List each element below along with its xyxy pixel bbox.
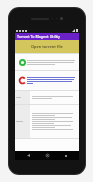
button[interactable]: Torrent file bbox=[15, 54, 79, 70]
other: Magnet link bbox=[19, 77, 26, 84]
button[interactable]: Recents bbox=[61, 151, 70, 160]
other: Torrent file bbox=[19, 59, 26, 66]
staticText: Torrent To Magnet Utility bbox=[17, 34, 60, 39]
button[interactable]: Open torrent file bbox=[15, 40, 79, 53]
button[interactable]: Back bbox=[24, 151, 33, 160]
button[interactable]: Home bbox=[43, 151, 52, 160]
button[interactable] bbox=[15, 91, 79, 104]
button[interactable] bbox=[15, 105, 79, 138]
button[interactable]: Torrent To Magnet Utility bbox=[15, 33, 79, 40]
button[interactable]: Magnet link bbox=[15, 71, 79, 90]
staticText: Open torrent file bbox=[31, 44, 63, 49]
